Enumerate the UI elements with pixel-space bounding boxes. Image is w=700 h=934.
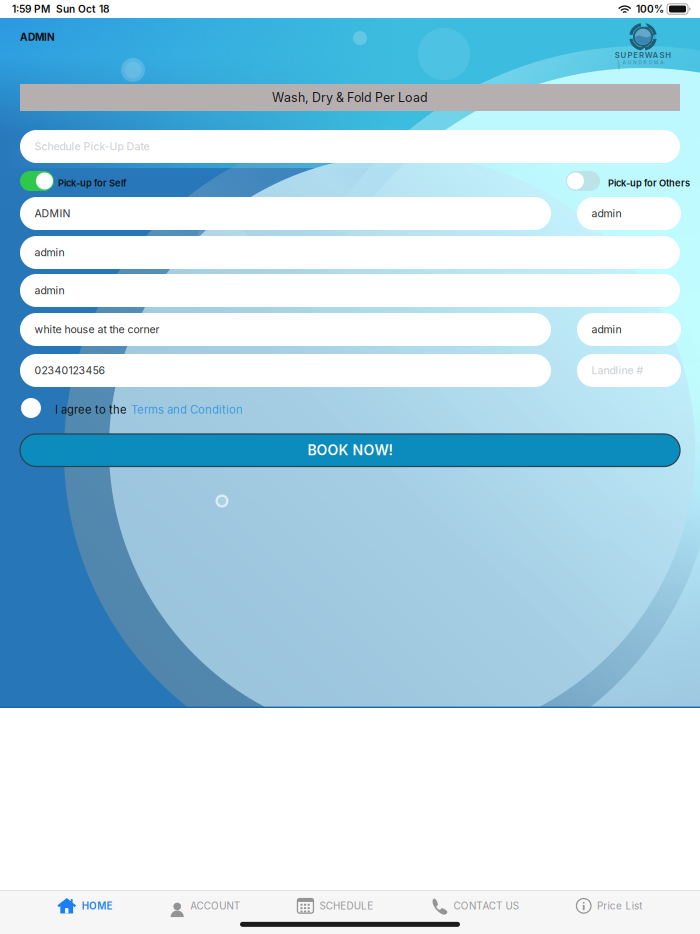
button[interactable]: I agree to the Terms and Condition (21, 398, 41, 418)
staticText: 1:59 PM (12, 3, 50, 15)
staticText: BOOK NOW! (307, 442, 392, 459)
button[interactable]: admin (577, 313, 681, 346)
button[interactable]: Terms and Condition (131, 403, 243, 417)
staticText: admin (34, 284, 64, 297)
staticText: ACCOUNT (190, 900, 240, 912)
staticText: Landline # (591, 364, 643, 377)
button[interactable]: Pick-up for Self (20, 171, 54, 191)
staticText: ADMIN (34, 207, 70, 220)
staticText: Price List (597, 900, 642, 912)
staticText: Sun Oct 18 (56, 3, 109, 15)
button[interactable]: 02340123456 (20, 354, 551, 387)
button[interactable]: CONTACT US (431, 891, 519, 921)
staticText: SCHEDULE (319, 900, 373, 912)
staticText: Terms and Condition (131, 403, 243, 417)
button[interactable]: Pick-up for Others (566, 171, 600, 191)
staticText: 02340123456 (34, 364, 105, 377)
button[interactable]: HOME (58, 891, 112, 921)
staticText: CONTACT US (453, 900, 519, 912)
button[interactable]: admin (20, 236, 680, 269)
button[interactable]: ACCOUNT (170, 891, 240, 920)
staticText: LAUNDROMAT (618, 60, 668, 65)
button[interactable]: SCHEDULE (297, 892, 373, 920)
button[interactable]: Schedule Pick-Up Date (20, 130, 680, 163)
staticText: Pick-up for Others (608, 177, 690, 189)
staticText: white house at the corner (34, 323, 159, 336)
staticText: Schedule Pick-Up Date (34, 140, 149, 153)
button[interactable]: ADMIN (20, 197, 551, 230)
staticText: admin (591, 323, 621, 336)
button[interactable]: white house at the corner (20, 313, 551, 346)
button[interactable]: Landline # (577, 354, 681, 387)
staticText: Pick-up for Self (58, 177, 127, 189)
button[interactable]: Price List (576, 892, 642, 920)
staticText: I agree to the (55, 403, 127, 417)
staticText: ADMIN (20, 31, 55, 43)
button[interactable]: BOOK NOW! (20, 434, 680, 466)
staticText: admin (34, 246, 64, 259)
button[interactable]: admin (577, 197, 681, 230)
staticText: HOME (82, 900, 112, 912)
staticText: Wash, Dry & Fold Per Load (272, 90, 428, 105)
staticText: 100% (636, 3, 664, 15)
staticText: SUPERWASH (615, 51, 671, 60)
button[interactable]: admin (20, 274, 680, 307)
staticText: admin (591, 207, 621, 220)
